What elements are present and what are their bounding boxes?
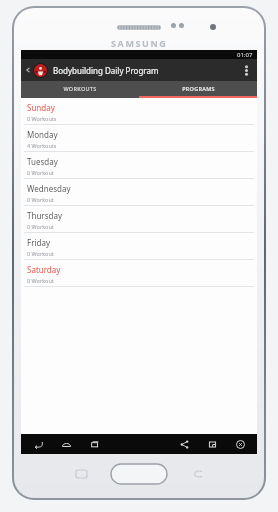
staticText: PROGRAMS xyxy=(182,85,215,92)
staticText: Friday xyxy=(27,237,51,248)
button[interactable]: Share xyxy=(177,437,191,451)
staticText: Monday xyxy=(27,129,58,140)
staticText: 0 Workouts xyxy=(27,115,57,122)
staticText: 0 Workout xyxy=(27,250,54,257)
button[interactable]: Monday xyxy=(21,125,257,151)
button[interactable]: Screenshot xyxy=(205,437,219,451)
button[interactable]: Home xyxy=(59,437,73,451)
button[interactable]: WORKOUTS xyxy=(21,81,139,96)
staticText: 0 Workout xyxy=(27,277,54,284)
staticText: 0 Workout xyxy=(27,196,54,203)
button[interactable]: Sunday xyxy=(21,98,257,124)
button[interactable]: More options xyxy=(239,63,253,77)
button[interactable]: Thursday xyxy=(21,206,257,232)
staticText: Bodybuilding Daily Program xyxy=(53,65,239,76)
staticText: Saturday xyxy=(27,264,61,275)
staticText: Tuesday xyxy=(27,156,58,167)
button[interactable]: Friday xyxy=(21,233,257,259)
staticText: 0 Workout xyxy=(27,223,54,230)
button[interactable]: Recent apps xyxy=(87,437,101,451)
staticText: 01:07 xyxy=(237,51,253,59)
button[interactable]: Back xyxy=(31,437,45,451)
staticText: SAMSUNG xyxy=(111,37,168,49)
button[interactable]: Close xyxy=(233,437,247,451)
staticText: Sunday xyxy=(27,102,55,113)
staticText: Wednesday xyxy=(27,183,71,194)
button[interactable]: PROGRAMS xyxy=(139,81,257,96)
button[interactable]: Navigate up xyxy=(25,67,31,73)
staticText: Thursday xyxy=(27,210,62,221)
staticText: 0 Workout xyxy=(27,169,54,176)
staticText: 4 Workouts xyxy=(27,142,57,149)
button[interactable]: Tuesday xyxy=(21,152,257,178)
button[interactable]: Saturday xyxy=(21,260,257,286)
staticText: WORKOUTS xyxy=(63,85,97,92)
button[interactable]: Wednesday xyxy=(21,179,257,205)
